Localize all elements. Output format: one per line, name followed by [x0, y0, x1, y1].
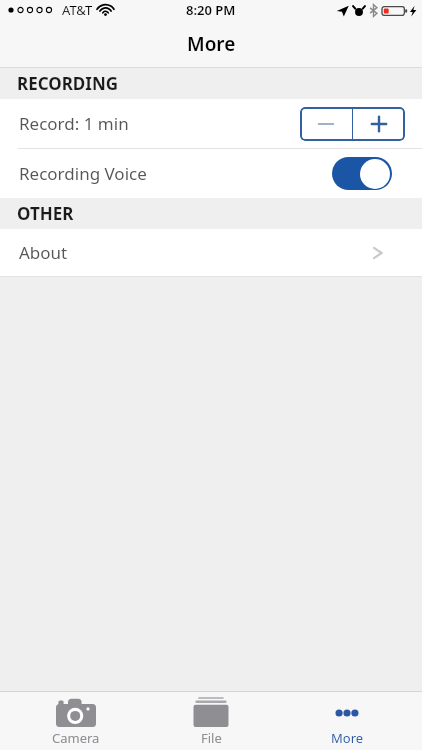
button[interactable]: Recording Voice toggle — [332, 157, 392, 190]
staticText: File — [201, 729, 222, 747]
staticText: AT&T — [62, 1, 93, 19]
staticText: More — [187, 31, 236, 57]
button[interactable]: Record: 1 min — [0, 99, 422, 148]
button[interactable]: Recording Voice — [0, 149, 422, 198]
button[interactable]: Increase — [353, 107, 405, 141]
staticText: OTHER — [17, 202, 74, 225]
button[interactable]: More — [287, 692, 407, 750]
button[interactable]: File — [151, 692, 271, 750]
staticText: 8:20 PM — [186, 1, 236, 19]
staticText: Recording Voice — [19, 162, 147, 185]
staticText: More — [331, 729, 364, 747]
button[interactable]: Camera — [16, 692, 136, 750]
staticText: RECORDING — [17, 72, 119, 95]
staticText: About — [19, 241, 68, 264]
staticText: Camera — [52, 729, 100, 747]
button[interactable]: Decrease — [300, 107, 352, 141]
staticText: Record: 1 min — [19, 112, 129, 135]
button[interactable]: About — [0, 229, 422, 276]
